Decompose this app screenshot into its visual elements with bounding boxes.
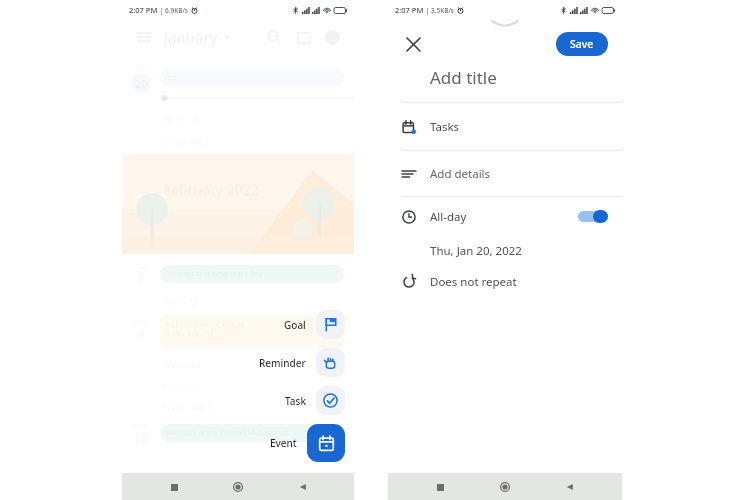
staticText: All-day [430,209,467,225]
staticText: Thu, Jan 20, 2022 [430,243,522,259]
staticText: Tasks [430,119,460,135]
button[interactable]: Goal [316,310,345,339]
staticText: Add details [430,166,491,182]
button[interactable]: Task [316,386,345,415]
button[interactable]: Save [556,32,608,56]
button[interactable]: Home [492,474,518,500]
staticText: Goal [284,318,306,332]
button[interactable]: Close [402,33,424,55]
staticText: February 2022 [164,180,259,199]
button[interactable]: All-day [388,197,622,236]
staticText: Task [285,394,306,408]
staticText: January [164,27,218,47]
staticText: 2:07 PM [129,5,158,15]
staticText: Reminder [259,356,306,370]
button[interactable]: Back [290,474,316,500]
staticText: 28 [135,430,148,445]
button[interactable]: Home [225,474,251,500]
button[interactable]: Reminder [316,348,345,377]
staticText: 20 [135,76,148,91]
button[interactable]: Does not repeat [388,266,622,298]
staticText: Does not repeat [430,274,517,290]
button[interactable]: Recents [161,474,187,500]
button[interactable]: Thu, Jan 20, 2022 [388,236,622,266]
button[interactable]: Create event [307,424,345,462]
button[interactable]: Recents [427,474,453,500]
staticText: 2:07 PM [395,5,424,15]
button[interactable]: Tasks [388,103,622,150]
staticText: Add title [430,66,497,89]
button[interactable]: Add details [388,151,622,196]
staticText: Save [570,37,594,51]
staticText: | 6.9KB/s [158,6,188,15]
staticText: | 3.5KB/s [424,6,454,15]
staticText: Event [270,436,297,450]
button[interactable]: Back [557,474,583,500]
